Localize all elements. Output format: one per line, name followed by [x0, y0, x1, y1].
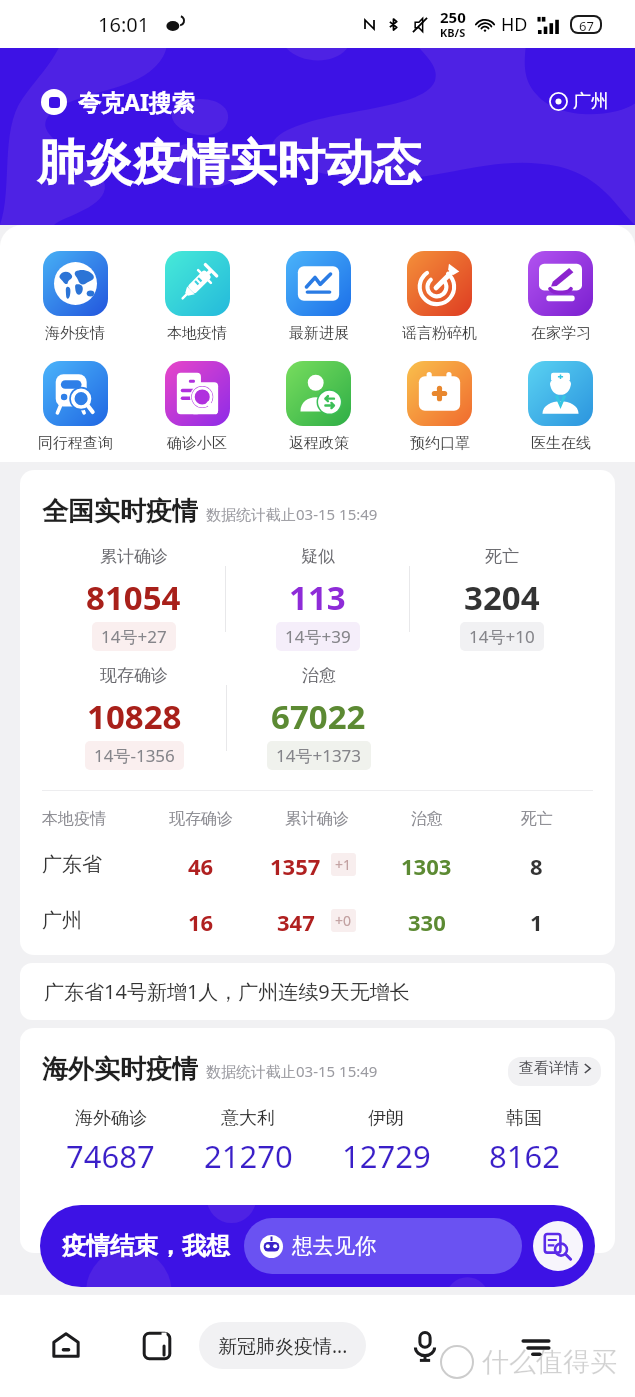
staticText: 疫情结束，我想	[62, 1231, 230, 1261]
staticText: 3204	[464, 575, 540, 620]
staticText: 伊朗	[368, 1107, 404, 1130]
staticText: 谣言粉碎机	[402, 324, 477, 343]
staticText: 累计确诊	[100, 546, 168, 567]
staticText: 14号+10	[469, 625, 535, 648]
staticText: 确诊小区	[167, 434, 227, 453]
button[interactable]: 新冠肺炎疫情...	[199, 1322, 366, 1369]
staticText: 同行程查询	[38, 434, 113, 453]
staticText: 14号+27	[101, 625, 167, 648]
staticText: 330	[408, 907, 446, 933]
staticText: 广州	[573, 90, 609, 113]
staticText: 海外实时疫情	[42, 1053, 198, 1086]
staticText: 最新进展	[289, 324, 349, 343]
button[interactable]: Tabs	[131, 1320, 183, 1372]
staticText: 21270	[204, 1135, 293, 1177]
staticText: 67	[579, 17, 594, 32]
staticText: 16	[188, 907, 214, 933]
staticText: 在家学习	[531, 324, 591, 343]
staticText: 数据统计截止03-15 15:49	[206, 504, 378, 524]
staticText: 67022	[271, 694, 366, 739]
staticText: 16:01	[98, 11, 150, 38]
staticText: 81054	[86, 575, 181, 620]
staticText: 意大利	[221, 1107, 275, 1130]
staticText: 12729	[342, 1135, 431, 1177]
staticText: HD	[501, 12, 528, 37]
staticText: 46	[188, 851, 214, 877]
staticText: 本地疫情	[42, 809, 106, 829]
staticText: 1357	[270, 851, 321, 877]
staticText: 想去见你	[292, 1233, 376, 1259]
staticText: 14号-1356	[94, 744, 175, 767]
staticText: 治愈	[302, 665, 336, 686]
staticText: 113	[289, 575, 346, 620]
button[interactable]: 在家学习	[500, 251, 621, 343]
button[interactable]: 查看详情	[508, 1057, 601, 1086]
staticText: 疑似	[301, 546, 335, 567]
staticText: 广东省14号新增1人，广州连续9天无增长	[44, 978, 410, 1005]
staticText: 治愈	[411, 809, 443, 829]
button[interactable]: 广东省14号新增1人，广州连续9天无增长	[20, 963, 615, 1020]
button[interactable]: 海外疫情	[14, 251, 136, 343]
staticText: 现存确诊	[100, 665, 168, 686]
staticText: +0	[335, 911, 352, 930]
staticText: 死亡	[521, 809, 553, 829]
staticText: 查看详情	[519, 1059, 579, 1078]
staticText: 广东省	[42, 852, 102, 877]
staticText: 医生在线	[531, 434, 591, 453]
staticText: 14号+39	[285, 625, 351, 648]
staticText: 74687	[66, 1135, 155, 1177]
staticText: 10828	[87, 694, 182, 739]
staticText: 累计确诊	[285, 809, 349, 829]
staticText: 数据统计截止03-15 15:49	[206, 1061, 378, 1081]
button[interactable]: 谣言粉碎机	[379, 251, 500, 343]
staticText: 8	[530, 851, 543, 877]
staticText: 347	[277, 907, 315, 933]
button[interactable]: 本地疫情	[136, 251, 258, 343]
button[interactable]: Menu	[510, 1320, 562, 1372]
staticText: 全国实时疫情	[42, 495, 198, 528]
staticText: 1	[530, 907, 543, 933]
button[interactable]: Voice search	[399, 1320, 451, 1372]
button[interactable]: 最新进展	[258, 251, 379, 343]
staticText: 夸克AI搜索	[78, 86, 195, 117]
staticText: 肺炎疫情实时动态	[37, 133, 421, 193]
staticText: 本地疫情	[167, 324, 227, 343]
staticText: 韩国	[506, 1107, 542, 1130]
staticText: 现存确诊	[169, 809, 233, 829]
button[interactable]: 确诊小区	[136, 361, 258, 453]
staticText: 广州	[42, 908, 82, 933]
staticText: 1303	[401, 851, 452, 877]
button[interactable]: 返程政策	[258, 361, 379, 453]
button[interactable]: 医生在线	[500, 361, 621, 453]
button[interactable]: 同行程查询	[14, 361, 136, 453]
staticText: 海外确诊	[75, 1107, 147, 1130]
staticText: 返程政策	[289, 434, 349, 453]
staticText: 预约口罩	[410, 434, 470, 453]
staticText: KB/S	[440, 25, 466, 40]
button[interactable]: 预约口罩	[379, 361, 500, 453]
staticText: 新冠肺炎疫情...	[218, 1333, 348, 1359]
staticText: 14号+1373	[276, 744, 362, 767]
staticText: 250	[440, 7, 466, 27]
staticText: 死亡	[485, 546, 519, 567]
staticText: 海外疫情	[45, 324, 105, 343]
button[interactable]: 想去见你	[244, 1218, 522, 1274]
button[interactable]: Scan	[533, 1221, 583, 1271]
staticText: +1	[335, 855, 352, 874]
staticText: 8162	[489, 1135, 560, 1177]
button[interactable]: Home	[40, 1320, 92, 1372]
staticText: 什么值得买	[482, 1345, 617, 1379]
